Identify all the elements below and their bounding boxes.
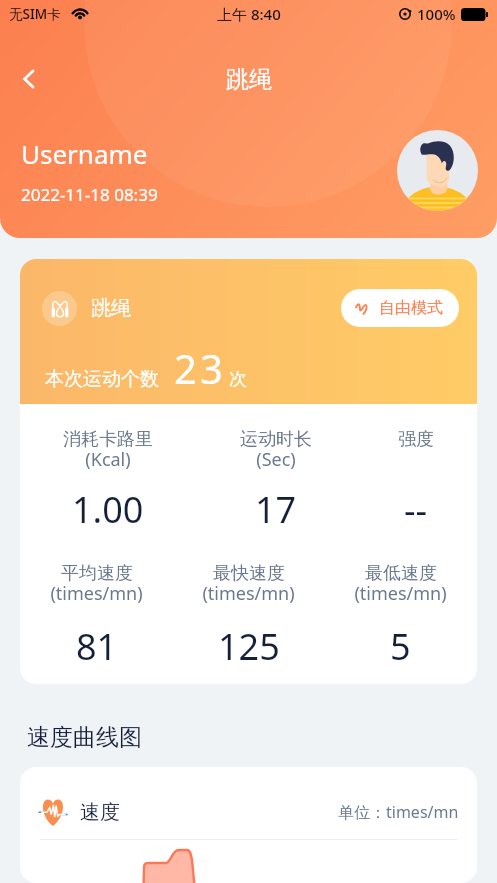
staticText: 23 xyxy=(174,341,226,395)
staticText: 上午 8:40 xyxy=(217,4,281,24)
button[interactable]: Back xyxy=(7,57,51,101)
staticText: 单位：times/mn xyxy=(338,801,459,823)
staticText: 125 xyxy=(218,622,280,671)
staticText: (Kcal) xyxy=(85,447,131,469)
staticText: 消耗卡路里 xyxy=(63,428,153,451)
staticText: 自由模式 xyxy=(379,298,443,318)
staticText: (times/mn) xyxy=(354,581,447,603)
staticText: 跳绳 xyxy=(226,65,272,94)
staticText: 100% xyxy=(417,4,456,24)
staticText: 运动时长 xyxy=(240,428,312,451)
staticText: 次 xyxy=(229,368,247,391)
staticText: 81 xyxy=(76,622,118,671)
staticText: (times/mn) xyxy=(50,581,143,603)
staticText: 最低速度 xyxy=(365,562,437,585)
staticText: 1.00 xyxy=(72,485,144,534)
staticText: Username xyxy=(21,136,148,171)
staticText: 平均速度 xyxy=(61,562,133,585)
staticText: 17 xyxy=(255,485,297,534)
staticText: 速度曲线图 xyxy=(27,723,142,752)
staticText: (times/mn) xyxy=(202,581,295,603)
staticText: (Sec) xyxy=(256,447,296,469)
staticText: 最快速度 xyxy=(213,562,285,585)
staticText: 跳绳 xyxy=(91,296,131,321)
staticText: 2022-11-18 08:39 xyxy=(21,183,158,206)
staticText: 无SIM卡 xyxy=(9,5,61,23)
staticText: 速度 xyxy=(80,800,120,825)
staticText: 强度 xyxy=(398,428,434,451)
staticText: -- xyxy=(404,485,428,534)
staticText: 本次运动个数 xyxy=(45,367,159,391)
staticText: 5 xyxy=(390,622,411,671)
button[interactable]: 自由模式 xyxy=(341,289,459,327)
